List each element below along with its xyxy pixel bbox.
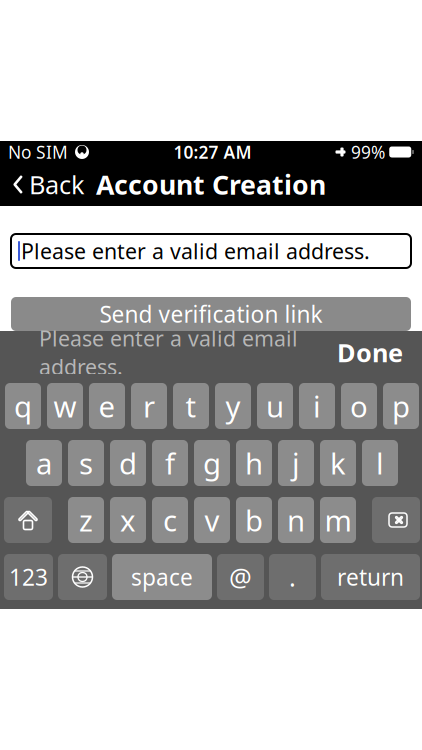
staticText: k xyxy=(330,443,346,482)
staticText: f xyxy=(165,443,175,482)
button[interactable]: h xyxy=(236,440,272,486)
staticText: s xyxy=(79,443,93,482)
button[interactable]: s xyxy=(68,440,104,486)
button[interactable]: Send verification link xyxy=(11,297,411,331)
button[interactable]: p xyxy=(383,383,419,429)
staticText: . xyxy=(289,560,296,594)
button[interactable]: return xyxy=(321,554,420,600)
staticText: u xyxy=(266,386,284,425)
button[interactable]: n xyxy=(278,497,314,543)
button[interactable]: t xyxy=(173,383,209,429)
staticText: w xyxy=(53,386,76,425)
button[interactable]: @ xyxy=(217,554,264,600)
staticText: j xyxy=(292,443,300,482)
staticText: return xyxy=(337,562,404,592)
button[interactable]: r xyxy=(131,383,167,429)
button[interactable]: y xyxy=(215,383,251,429)
button[interactable]: x xyxy=(110,497,146,543)
staticText: e xyxy=(98,386,115,425)
button[interactable]: m xyxy=(320,497,356,543)
button[interactable]: . xyxy=(269,554,316,600)
button[interactable]: v xyxy=(194,497,230,543)
staticText: a xyxy=(36,443,52,482)
staticText: space xyxy=(131,562,193,592)
staticText: m xyxy=(324,500,351,539)
button[interactable]: o xyxy=(341,383,377,429)
staticText: l xyxy=(376,443,384,482)
staticText: h xyxy=(245,443,263,482)
button[interactable]: q xyxy=(5,383,41,429)
button[interactable]: u xyxy=(257,383,293,429)
button[interactable]: e xyxy=(89,383,125,429)
button[interactable]: g xyxy=(194,440,230,486)
staticText: 99% xyxy=(351,140,385,163)
button[interactable]: l xyxy=(362,440,398,486)
staticText: r xyxy=(143,386,155,425)
staticText: q xyxy=(14,386,32,425)
staticText: g xyxy=(203,443,221,482)
button[interactable]: Done xyxy=(323,331,417,374)
staticText: 10:27 AM xyxy=(173,140,251,163)
staticText: Send verification link xyxy=(99,299,322,329)
staticText: v xyxy=(204,500,219,539)
staticText: Account Creation xyxy=(96,167,326,202)
staticText: Please enter a valid email address. xyxy=(21,237,370,265)
button[interactable]: space xyxy=(112,554,212,600)
staticText: x xyxy=(120,500,136,539)
button[interactable]: a xyxy=(26,440,62,486)
button[interactable]: z xyxy=(68,497,104,543)
staticText: No SIM xyxy=(8,140,68,163)
button[interactable]: k xyxy=(320,440,356,486)
staticText: 123 xyxy=(9,562,48,592)
button[interactable]: j xyxy=(278,440,314,486)
button[interactable]: 123 xyxy=(4,554,53,600)
staticText: i xyxy=(313,386,321,425)
button[interactable]: w xyxy=(47,383,83,429)
button[interactable]: Shift xyxy=(4,497,52,543)
button[interactable]: c xyxy=(152,497,188,543)
staticText: Done xyxy=(337,336,403,369)
button[interactable]: b xyxy=(236,497,272,543)
button[interactable]: d xyxy=(110,440,146,486)
staticText: Back xyxy=(29,168,85,201)
button[interactable]: f xyxy=(152,440,188,486)
button[interactable]: Back xyxy=(0,163,97,206)
staticText: o xyxy=(350,386,368,425)
button[interactable]: i xyxy=(299,383,335,429)
staticText: c xyxy=(163,500,177,539)
staticText: Please enter a valid email address. xyxy=(39,324,298,381)
button[interactable]: Delete xyxy=(372,497,420,543)
staticText: @ xyxy=(229,560,252,594)
staticText: p xyxy=(392,386,410,425)
staticText: n xyxy=(287,500,305,539)
staticText: z xyxy=(79,500,93,539)
staticText: y xyxy=(225,386,240,425)
staticText: b xyxy=(245,500,263,539)
staticText: d xyxy=(119,443,137,482)
staticText: t xyxy=(185,386,196,425)
button[interactable]: Next keyboard xyxy=(58,554,107,600)
